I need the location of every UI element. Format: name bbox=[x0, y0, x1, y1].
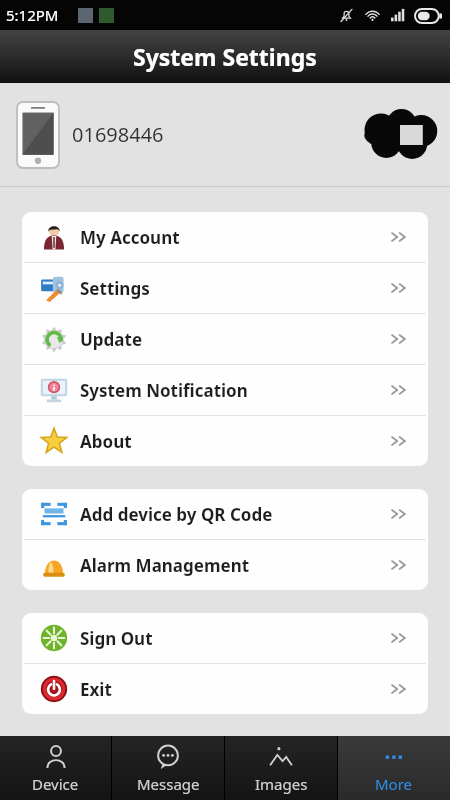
button[interactable]: Alarm Management bbox=[22, 540, 428, 590]
staticText: 01698446 bbox=[72, 121, 164, 148]
staticText: More bbox=[375, 774, 413, 794]
button[interactable]: More bbox=[338, 736, 450, 800]
staticText: Sign Out bbox=[80, 627, 390, 650]
staticText: Add device by QR Code bbox=[80, 503, 390, 526]
staticText: Update bbox=[80, 328, 390, 351]
staticText: Device bbox=[32, 774, 79, 794]
button[interactable]: About bbox=[22, 416, 428, 466]
staticText: Images bbox=[255, 774, 308, 794]
button[interactable]: Sign Out bbox=[22, 613, 428, 663]
button[interactable]: Images bbox=[225, 736, 337, 800]
button[interactable]: Exit bbox=[22, 664, 428, 714]
staticText: 5:12PM bbox=[6, 5, 59, 25]
staticText: Exit bbox=[80, 678, 390, 701]
staticText: Alarm Management bbox=[80, 554, 390, 577]
staticText: My Account bbox=[80, 226, 390, 249]
staticText: About bbox=[80, 430, 390, 453]
button[interactable]: Message bbox=[112, 736, 224, 800]
button[interactable]: Add device by QR Code bbox=[22, 489, 428, 539]
staticText: Settings bbox=[80, 277, 390, 300]
button[interactable]: My Account bbox=[22, 212, 428, 262]
button[interactable]: Device bbox=[0, 736, 111, 800]
staticText: Message bbox=[137, 774, 200, 794]
button[interactable]: Settings bbox=[22, 263, 428, 313]
staticText: System Notification bbox=[80, 379, 390, 402]
button[interactable]: Update bbox=[22, 314, 428, 364]
button[interactable]: System Notification bbox=[22, 365, 428, 415]
staticText: System Settings bbox=[133, 41, 317, 72]
